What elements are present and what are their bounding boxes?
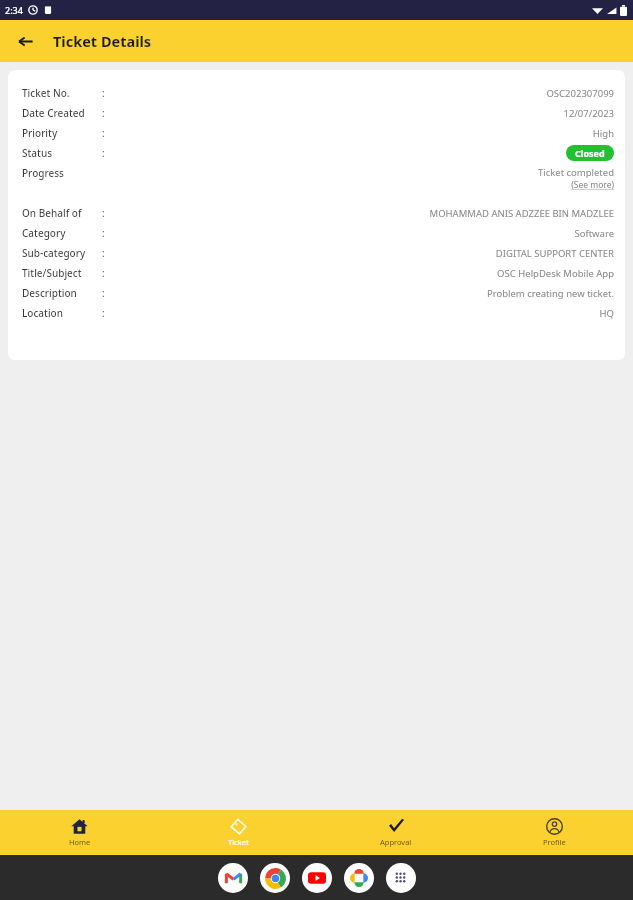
- staticText: Category: [22, 226, 66, 240]
- button[interactable]: App: [386, 863, 416, 893]
- button[interactable]: App: [260, 863, 290, 893]
- staticText: :: [102, 126, 105, 140]
- staticText: OSC202307099: [546, 87, 614, 100]
- staticText: :: [102, 246, 105, 260]
- staticText: :: [102, 206, 105, 220]
- staticText: Closed: [575, 147, 605, 159]
- staticText: :: [102, 266, 105, 280]
- staticText: :: [102, 106, 105, 120]
- button[interactable]: Approval: [317, 810, 475, 855]
- staticText: Progress: [22, 166, 64, 180]
- button[interactable]: App: [218, 863, 248, 893]
- staticText: Location: [22, 306, 63, 320]
- staticText: :: [102, 286, 105, 300]
- staticText: :: [102, 306, 105, 320]
- button[interactable]: Ticket: [159, 810, 317, 855]
- staticText: Ticket completed: [537, 166, 614, 179]
- staticText: Approval: [380, 837, 412, 847]
- staticText: DIGITAL SUPPORT CENTER: [495, 247, 614, 260]
- staticText: Title/Subject: [22, 266, 82, 280]
- staticText: Ticket: [228, 837, 249, 847]
- staticText: OSC HelpDesk Mobile App: [497, 267, 614, 280]
- staticText: 12/07/2023: [563, 107, 614, 120]
- staticText: Home: [69, 837, 91, 847]
- staticText: Description: [22, 286, 77, 300]
- staticText: Ticket Details: [53, 31, 152, 51]
- staticText: (See more): [571, 179, 614, 191]
- staticText: Priority: [22, 126, 58, 140]
- staticText: Sub-category: [22, 246, 86, 260]
- button[interactable]: Back: [10, 26, 40, 56]
- staticText: HQ: [599, 307, 614, 320]
- staticText: Date Created: [22, 106, 85, 120]
- staticText: On Behalf of: [22, 206, 82, 220]
- staticText: 2:34: [5, 4, 23, 16]
- staticText: Status: [22, 146, 53, 160]
- staticText: Ticket No.: [22, 86, 70, 100]
- button[interactable]: (See more): [571, 179, 614, 191]
- staticText: :: [22, 166, 25, 180]
- staticText: :: [102, 226, 105, 240]
- staticText: Problem creating new ticket.: [486, 287, 614, 300]
- staticText: :: [102, 86, 105, 100]
- staticText: :: [102, 146, 105, 160]
- button[interactable]: App: [344, 863, 374, 893]
- staticText: Profile: [543, 837, 566, 847]
- button[interactable]: App: [302, 863, 332, 893]
- button[interactable]: Home: [0, 810, 159, 855]
- staticText: High: [592, 127, 614, 140]
- staticText: MOHAMMAD ANIS ADZZEE BIN MADZLEE: [429, 207, 614, 220]
- button[interactable]: Profile: [475, 810, 633, 855]
- staticText: Software: [574, 227, 614, 240]
